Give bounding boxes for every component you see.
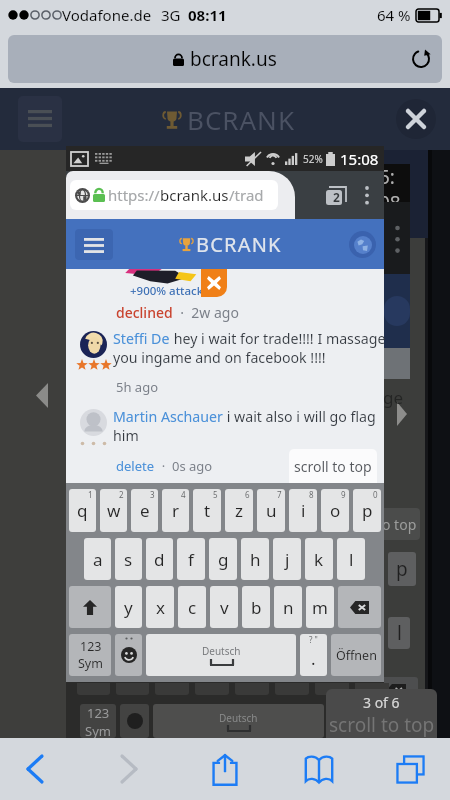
button[interactable]: m — [306, 586, 334, 628]
staticText: 123 — [87, 704, 110, 722]
staticText: o top — [382, 515, 417, 534]
button[interactable]: e — [131, 489, 158, 532]
button[interactable]: Menu — [75, 229, 113, 260]
button[interactable]: Close — [396, 99, 436, 139]
staticText: 52% — [303, 152, 323, 166]
button[interactable]: Öffnen — [331, 634, 381, 676]
button[interactable]: Steffi De — [76, 331, 394, 391]
staticText: 5:08 — [379, 164, 405, 202]
staticText: Sym — [85, 722, 111, 738]
button[interactable]: h — [241, 538, 269, 580]
button[interactable]: n — [274, 586, 302, 628]
staticText: l — [397, 620, 402, 646]
staticText: 2 — [333, 189, 340, 205]
staticText: i wait also i will go flag — [223, 407, 376, 426]
staticText: 4 — [181, 489, 186, 500]
staticText: Deutsch — [219, 711, 258, 725]
button[interactable]: Reload — [408, 46, 434, 72]
staticText: e — [140, 499, 150, 522]
button[interactable]: a — [84, 538, 111, 580]
staticText: v — [220, 596, 229, 619]
staticText: p — [362, 499, 373, 522]
button[interactable]: Menu — [18, 96, 62, 142]
button[interactable]: 123 — [69, 634, 111, 676]
button[interactable]: v — [210, 586, 238, 628]
staticText: 3 — [150, 489, 155, 500]
button[interactable]: j — [273, 538, 301, 580]
button[interactable]: Language — [349, 231, 376, 258]
button[interactable]: More options — [353, 181, 381, 209]
button[interactable]: i — [289, 489, 317, 532]
staticText: b — [251, 596, 262, 619]
staticText: d — [154, 548, 165, 571]
button[interactable]: scroll to top — [289, 449, 377, 483]
button[interactable]: r — [162, 489, 189, 532]
staticText: 2 — [119, 489, 124, 500]
staticText: u — [266, 499, 277, 522]
staticText: ? " — [309, 634, 318, 645]
staticText: 3G — [161, 5, 181, 25]
staticText: a — [93, 548, 103, 571]
button[interactable]: Backspace — [338, 586, 381, 628]
staticText: https:// — [108, 185, 160, 205]
staticText: 1 — [88, 489, 93, 500]
button[interactable]: o — [321, 489, 349, 532]
button[interactable]: w — [100, 489, 127, 532]
staticText: p — [396, 556, 408, 582]
button[interactable]: y — [115, 586, 142, 628]
button[interactable]: x — [146, 586, 174, 628]
button[interactable]: u — [257, 489, 285, 532]
button[interactable]: d — [146, 538, 173, 580]
button[interactable]: https:// — [70, 180, 278, 210]
button[interactable]: Forward — [104, 745, 152, 793]
button[interactable]: Tabs — [321, 179, 353, 211]
staticText: hey i wait for trade!!!! I massage — [170, 329, 386, 348]
staticText: q — [77, 499, 88, 522]
staticText: 5 — [213, 489, 218, 500]
button[interactable]: k — [305, 538, 333, 580]
staticText: w — [107, 499, 121, 522]
button[interactable]: Share — [201, 745, 249, 793]
button[interactable]: Bookmarks — [295, 745, 343, 793]
staticText: 3 of 6 — [363, 693, 400, 712]
button[interactable]: Back — [10, 745, 58, 793]
button[interactable]: . — [300, 634, 327, 676]
button[interactable]: Space — [146, 634, 296, 676]
staticText: 08:11 — [188, 5, 227, 25]
staticText: 123 — [80, 638, 102, 655]
button[interactable]: Martin Aschauer — [76, 409, 394, 471]
button[interactable]: c — [178, 586, 206, 628]
staticText: · 2w ago — [173, 303, 239, 322]
staticText: n — [283, 596, 294, 619]
button[interactable]: Emoji — [115, 634, 142, 676]
staticText: l — [349, 548, 354, 571]
staticText: bcrank.us — [190, 46, 277, 72]
staticText: · 0s ago — [155, 457, 213, 475]
staticText: Sym — [78, 655, 103, 672]
button[interactable]: bcrank.us — [8, 35, 442, 83]
button[interactable]: b — [242, 586, 270, 628]
button[interactable]: t — [193, 489, 221, 532]
staticText: z — [235, 499, 243, 522]
staticText: Steffi De — [113, 329, 170, 348]
staticText: . — [311, 647, 316, 670]
staticText: r — [172, 499, 180, 522]
button[interactable]: z — [225, 489, 253, 532]
staticText: Öffnen — [336, 647, 377, 664]
button[interactable]: l — [337, 538, 365, 580]
button[interactable]: f — [177, 538, 205, 580]
staticText: o — [330, 499, 341, 522]
staticText: j — [285, 548, 290, 571]
button[interactable]: p — [353, 489, 381, 532]
button[interactable]: q — [69, 489, 96, 532]
staticText: him — [113, 426, 139, 445]
button[interactable]: Shift — [69, 586, 111, 628]
button[interactable]: Tabs — [386, 745, 434, 793]
staticText: declined — [116, 303, 173, 322]
staticText: Vodafone.de — [62, 5, 152, 25]
button[interactable]: s — [115, 538, 142, 580]
staticText: +900% attack — [130, 283, 204, 299]
staticText: i — [301, 499, 306, 522]
button[interactable]: g — [209, 538, 237, 580]
staticText: scroll to top — [329, 712, 435, 738]
